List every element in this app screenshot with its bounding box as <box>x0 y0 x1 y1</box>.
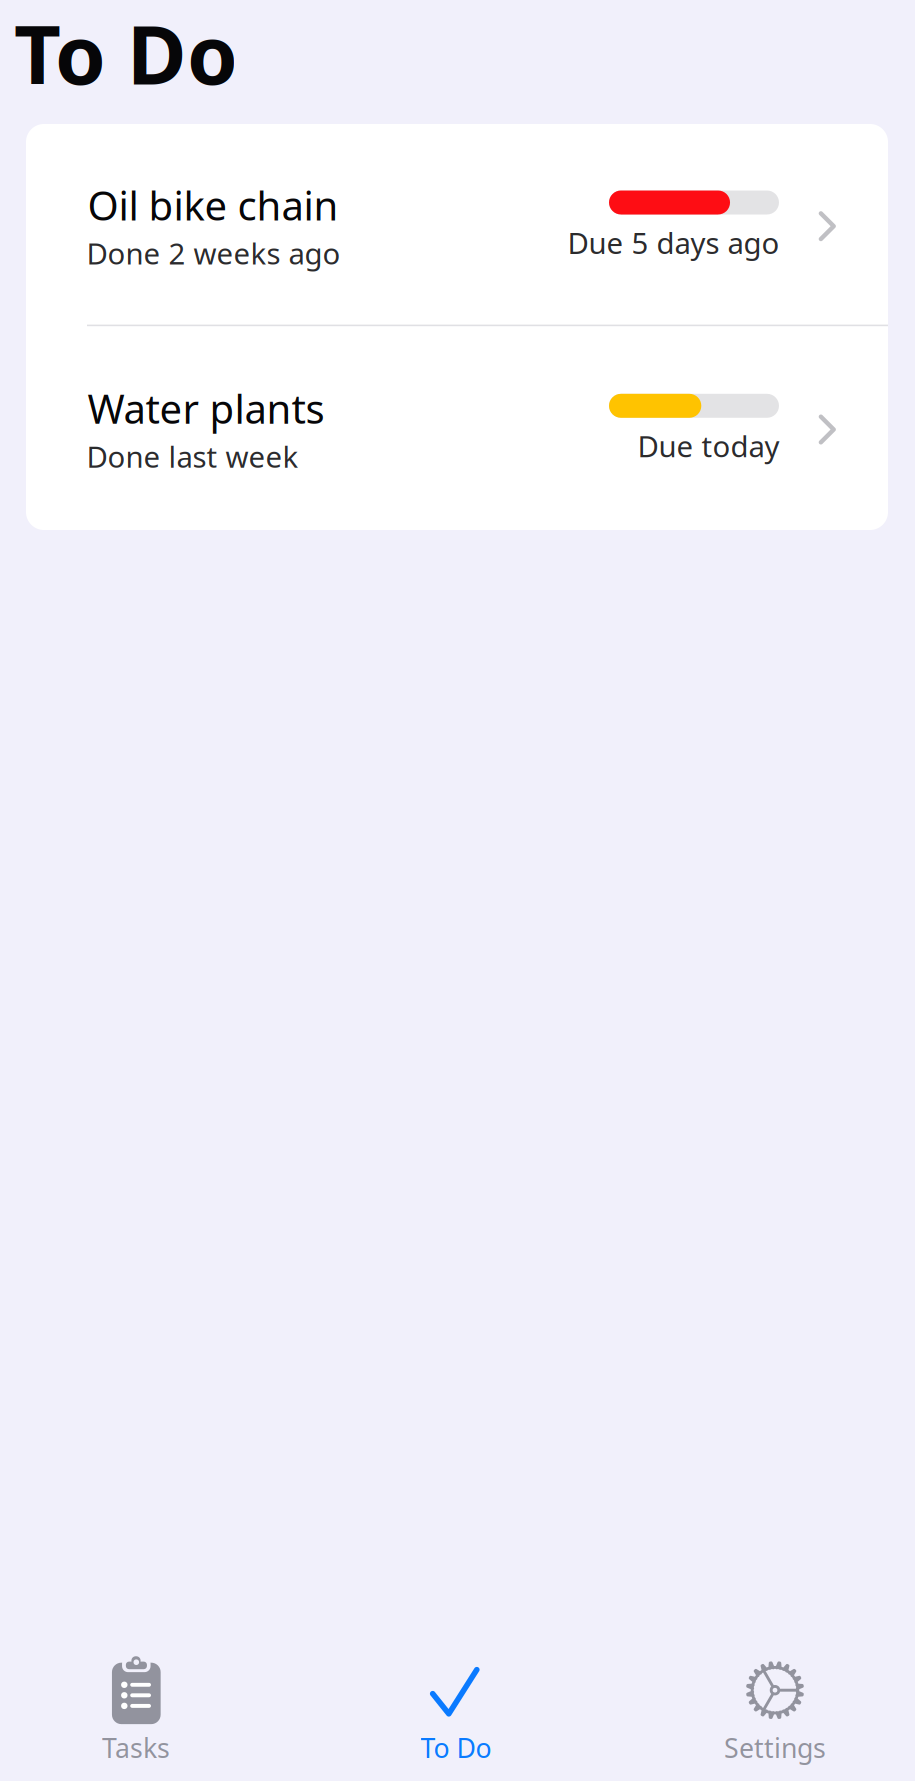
button[interactable]: Oil bike chain <box>26 124 888 325</box>
button[interactable]: To Do <box>356 1645 556 1771</box>
staticText: Tasks <box>102 1730 170 1765</box>
staticText: Due 5 days ago <box>567 223 779 262</box>
staticText: Done 2 weeks ago <box>86 233 340 272</box>
button[interactable]: Tasks <box>36 1645 236 1771</box>
staticText: Done last week <box>86 437 298 476</box>
button[interactable]: Settings <box>675 1645 875 1771</box>
staticText: Due today <box>637 426 779 465</box>
staticText: To Do <box>420 1730 491 1765</box>
button[interactable]: Water plants <box>26 327 888 529</box>
staticText: Water plants <box>87 382 324 435</box>
staticText: Oil bike chain <box>87 178 338 231</box>
staticText: To Do <box>14 0 238 107</box>
staticText: Settings <box>724 1730 826 1765</box>
